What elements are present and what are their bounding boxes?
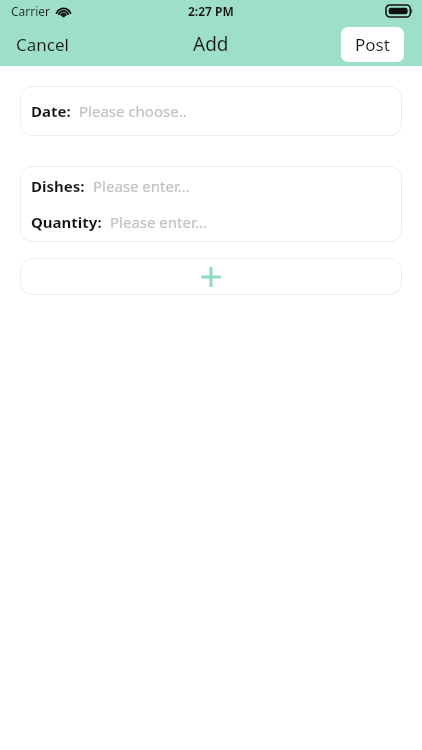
button[interactable]: Date: (20, 86, 402, 136)
staticText: 2:27 PM (188, 3, 234, 19)
staticText: Quantity: (31, 212, 102, 232)
staticText: Carrier (11, 3, 51, 19)
staticText: Cancel (16, 33, 69, 56)
button[interactable]: Post (341, 27, 404, 62)
staticText: Post (355, 33, 390, 56)
staticText: Please enter... (93, 176, 190, 196)
staticText: Date: (31, 101, 71, 121)
button[interactable]: Cancel (0, 27, 85, 62)
staticText: Add (193, 31, 229, 57)
staticText: Dishes: (31, 176, 85, 196)
staticText: Please enter... (110, 212, 207, 232)
button[interactable]: Quantity: (20, 207, 402, 237)
staticText: Please choose.. (79, 101, 187, 121)
button[interactable]: Dishes: (20, 171, 402, 201)
button[interactable]: Add another dish (20, 258, 402, 295)
